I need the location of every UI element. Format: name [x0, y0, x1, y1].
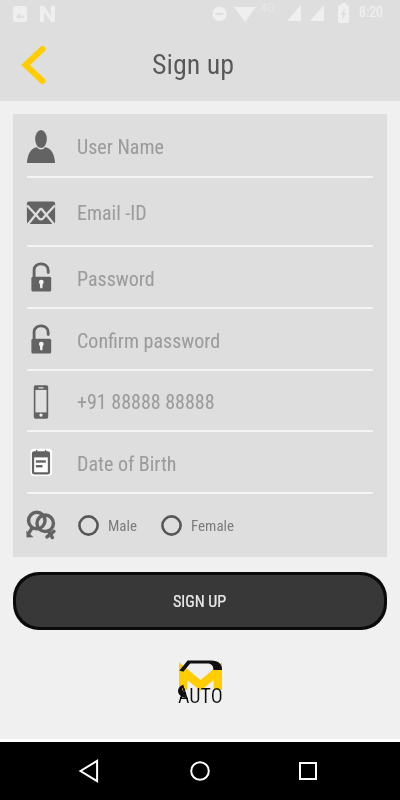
button[interactable]: +91 88888 88888 [13, 371, 387, 432]
button[interactable]: Password [13, 247, 387, 309]
staticText: Confirm password [77, 329, 221, 352]
button[interactable]: Date of Birth [13, 432, 387, 494]
staticText: SIGN UP [173, 592, 227, 611]
button[interactable]: User Name [13, 114, 387, 178]
staticText: 8:20 [359, 4, 384, 20]
staticText: User Name [77, 135, 164, 158]
staticText: Email -ID [77, 201, 147, 224]
staticText: +91 88888 88888 [77, 390, 215, 413]
staticText: 4G [261, 1, 275, 15]
staticText: Female [191, 517, 235, 535]
button[interactable]: SIGN UP [16, 575, 384, 627]
button[interactable]: Back [12, 43, 56, 87]
staticText: Male [108, 517, 137, 535]
button[interactable]: Female [161, 515, 235, 536]
staticText: Date of Birth [77, 452, 177, 475]
staticText: Sign up [152, 48, 235, 81]
button[interactable]: Recents [284, 747, 332, 795]
button[interactable]: Male [78, 515, 137, 536]
button[interactable]: Confirm password [13, 309, 387, 371]
staticText: AUTO [178, 684, 223, 707]
staticText: Password [77, 267, 155, 290]
button[interactable]: Home [176, 747, 224, 795]
button[interactable]: Back [65, 747, 113, 795]
button[interactable]: Email -ID [13, 178, 387, 247]
